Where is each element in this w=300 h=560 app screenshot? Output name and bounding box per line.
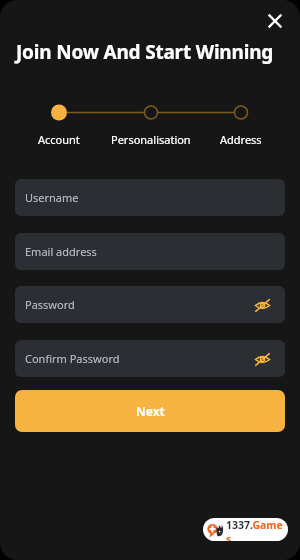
- staticText: Password: [25, 297, 75, 312]
- staticText: Personalisation: [111, 132, 191, 147]
- staticText: 1337.Games: [226, 518, 288, 541]
- button[interactable]: Account: [0, 131, 119, 147]
- staticText: Username: [25, 190, 79, 205]
- button[interactable]: Close: [259, 5, 291, 37]
- staticText: Email address: [25, 244, 97, 259]
- button[interactable]: Password: [15, 286, 285, 323]
- button[interactable]: 1337.Games: [203, 518, 288, 541]
- button[interactable]: Address: [181, 131, 300, 147]
- staticText: Next: [136, 403, 165, 419]
- button[interactable]: Confirm Password: [15, 340, 285, 377]
- staticText: Confirm Password: [25, 351, 120, 366]
- staticText: Address: [220, 132, 262, 147]
- button[interactable]: Next: [15, 390, 285, 432]
- button[interactable]: Show password: [247, 290, 277, 320]
- staticText: Join Now And Start Winning: [16, 39, 274, 65]
- button[interactable]: Username: [15, 179, 285, 216]
- button[interactable]: Show password: [247, 344, 277, 374]
- staticText: Account: [38, 132, 80, 147]
- button[interactable]: Personalisation: [91, 131, 211, 147]
- button[interactable]: Email address: [15, 233, 285, 270]
